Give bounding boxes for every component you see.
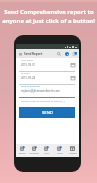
staticText: Send to Email Ids*	[21, 85, 40, 88]
button[interactable]: Menu	[16, 49, 24, 58]
button[interactable]: Share	[71, 50, 78, 57]
staticText: myboss@jkkmassinfotech.com	[21, 89, 60, 93]
button[interactable]: Search	[55, 50, 62, 57]
staticText: Attendance	[29, 152, 40, 155]
staticText: Send Report	[24, 52, 43, 56]
staticText: 2015-09-01	[21, 63, 36, 67]
button[interactable]: Reports	[16, 144, 28, 157]
button[interactable]: Marks	[40, 144, 53, 157]
staticText: 2015-09-28	[21, 76, 36, 80]
button[interactable]: Notifications	[63, 50, 70, 57]
staticText: anyone at just click of a button!	[2, 17, 95, 25]
button[interactable]: Attendance	[28, 144, 40, 157]
staticText: To Date *	[21, 72, 31, 75]
staticText: Multiple Email Ids separated by comma ( …	[21, 100, 66, 103]
button[interactable]: SEND	[19, 107, 75, 118]
button[interactable]: Assign	[53, 144, 66, 157]
staticText: Calendar	[69, 152, 77, 155]
staticText: Assign	[57, 152, 63, 155]
button[interactable]: Calendar	[66, 144, 79, 157]
staticText: SEND	[42, 110, 53, 116]
staticText: Marks	[44, 152, 50, 155]
staticText: Send Comprehensive report to	[4, 8, 94, 16]
staticText: Reports	[19, 152, 26, 155]
staticText: From Date *	[21, 59, 34, 62]
